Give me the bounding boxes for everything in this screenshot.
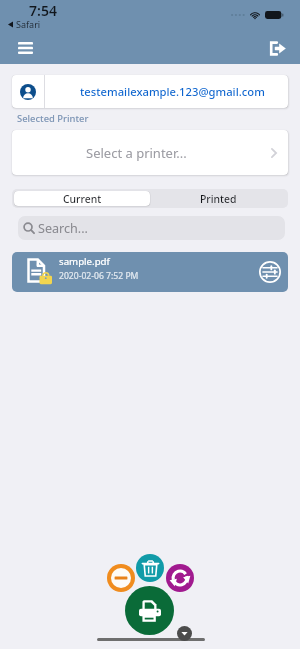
staticText: Current bbox=[63, 192, 102, 206]
staticText: 2020-02-06 7:52 PM bbox=[59, 270, 139, 282]
staticText: testemailexample.123@gmail.com bbox=[80, 84, 265, 99]
button[interactable]: Delete bbox=[136, 554, 164, 582]
button[interactable]: Printed bbox=[150, 191, 286, 206]
button[interactable]: Menu bbox=[10, 33, 40, 63]
button[interactable]: Current bbox=[14, 191, 150, 206]
button[interactable]: sample.pdf bbox=[12, 252, 288, 292]
staticText: Safari bbox=[16, 18, 41, 30]
button[interactable]: testemailexample.123@gmail.com bbox=[12, 75, 288, 108]
button[interactable]: Sign out bbox=[262, 33, 292, 63]
staticText: Selected Printer bbox=[17, 112, 89, 125]
button[interactable]: Remove bbox=[107, 564, 135, 592]
staticText: sample.pdf bbox=[59, 255, 110, 268]
button[interactable]: Search... bbox=[18, 216, 285, 240]
button[interactable]: Options bbox=[255, 257, 285, 287]
staticText: Select a printer... bbox=[86, 144, 187, 162]
button[interactable]: Refresh bbox=[166, 564, 194, 592]
staticText: 7:54 bbox=[29, 1, 57, 20]
button[interactable]: Select a printer... bbox=[12, 130, 288, 175]
button[interactable]: Collapse menu bbox=[177, 626, 192, 641]
button[interactable]: Print bbox=[125, 586, 174, 635]
staticText: Search... bbox=[38, 220, 88, 237]
staticText: Printed bbox=[200, 192, 237, 206]
